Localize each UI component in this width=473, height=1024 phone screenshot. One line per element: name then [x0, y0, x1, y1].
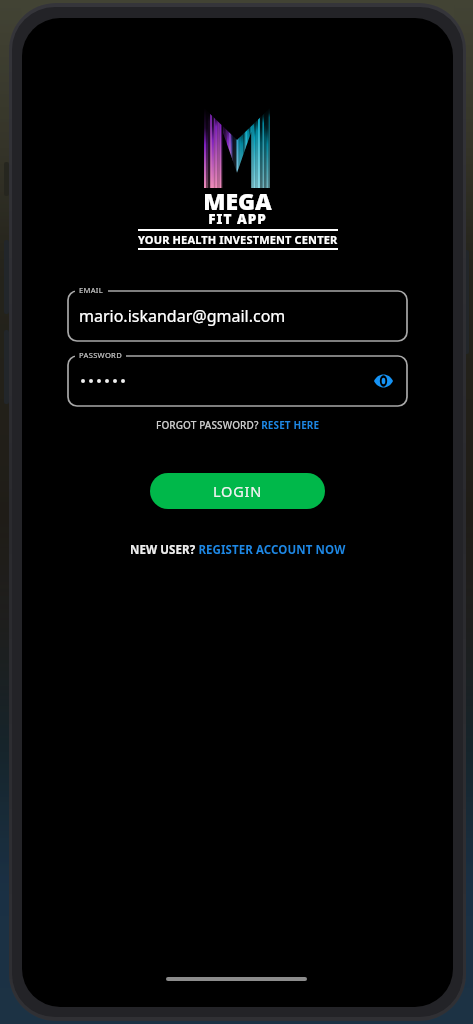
button[interactable]: mario.iskandar@gmail.com — [67, 290, 408, 342]
staticText: PASSWORD — [79, 350, 122, 360]
button[interactable]: FORGOT PASSWORD? RESET HERE — [156, 418, 320, 432]
button[interactable]: LOGIN — [150, 473, 325, 509]
staticText: mario.iskandar@gmail.com — [79, 305, 286, 327]
staticText: EMAIL — [79, 285, 104, 295]
staticText: FIT APP — [208, 210, 267, 228]
staticText: LOGIN — [213, 481, 263, 501]
button[interactable]: Show password — [67, 355, 408, 407]
button[interactable]: Show password — [372, 370, 394, 392]
button[interactable]: NEW USER? REGISTER ACCOUNT NOW — [130, 542, 346, 558]
staticText: MEGA — [203, 185, 272, 216]
staticText: YOUR HEALTH INVESTMENT CENTER — [138, 232, 338, 247]
